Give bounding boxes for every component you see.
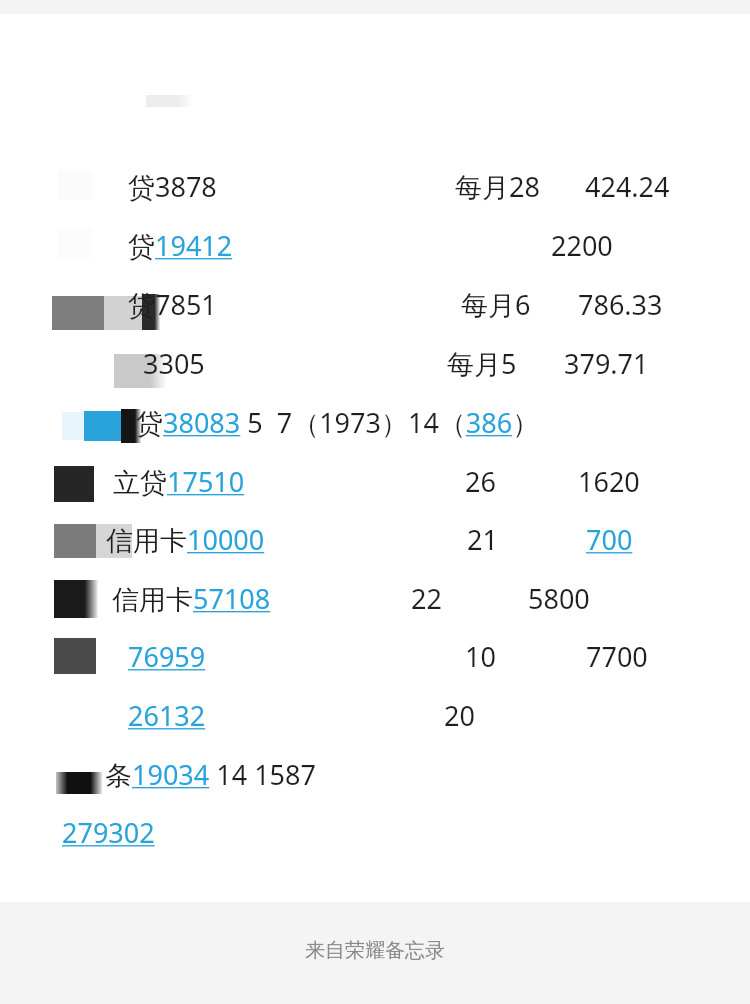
button[interactable]: 76959 bbox=[128, 638, 206, 675]
staticText: 10 bbox=[465, 638, 496, 675]
staticText: 424.24 bbox=[585, 168, 670, 205]
button[interactable]: 贷38083 5 7（1973）14（386） bbox=[136, 404, 540, 441]
button[interactable]: 26 bbox=[465, 463, 496, 500]
staticText: 379.71 bbox=[564, 345, 649, 382]
staticText: 7700 bbox=[586, 638, 648, 675]
button[interactable]: 1620 bbox=[578, 463, 640, 500]
button[interactable]: 2200 bbox=[551, 227, 613, 264]
staticText: 信用卡10000 bbox=[106, 521, 265, 558]
button[interactable]: 信用卡57108 bbox=[112, 580, 271, 617]
staticText: 2200 bbox=[551, 227, 613, 264]
button[interactable]: 每月5 bbox=[447, 345, 517, 382]
staticText: 贷38083 5 7（1973）14（386） bbox=[136, 404, 540, 441]
staticText: 20 bbox=[444, 697, 475, 734]
staticText: 条19034 14 1587 bbox=[105, 756, 316, 793]
button[interactable]: 700 bbox=[586, 521, 633, 558]
button[interactable]: 379.71 bbox=[564, 345, 649, 382]
staticText: 每月28 bbox=[455, 168, 540, 205]
button[interactable]: 7700 bbox=[586, 638, 648, 675]
staticText: 贷3878 bbox=[128, 168, 217, 205]
button[interactable]: 贷3878 bbox=[128, 168, 217, 205]
button[interactable]: 5800 bbox=[528, 580, 590, 617]
staticText: 21 bbox=[467, 521, 498, 558]
button[interactable]: 10 bbox=[465, 638, 496, 675]
staticText: 贷19412 bbox=[128, 227, 233, 264]
button[interactable]: 279302 bbox=[62, 814, 155, 851]
button[interactable]: 贷19412 bbox=[128, 227, 233, 264]
button[interactable]: 424.24 bbox=[585, 168, 670, 205]
button[interactable]: 来自荣耀备忘录 bbox=[305, 938, 445, 963]
staticText: 279302 bbox=[62, 814, 155, 851]
staticText: 786.33 bbox=[578, 286, 663, 323]
button[interactable]: 每月28 bbox=[455, 168, 540, 205]
staticText: 每月6 bbox=[461, 286, 531, 323]
button[interactable]: 22 bbox=[411, 580, 442, 617]
button[interactable]: 条19034 14 1587 bbox=[105, 756, 316, 793]
staticText: 每月5 bbox=[447, 345, 517, 382]
button[interactable]: 3305 bbox=[143, 345, 205, 382]
button[interactable]: 26132 bbox=[128, 697, 206, 734]
staticText: 贷7851 bbox=[128, 286, 217, 323]
staticText: 700 bbox=[586, 521, 633, 558]
staticText: 信用卡57108 bbox=[112, 580, 271, 617]
button[interactable]: 信用卡10000 bbox=[106, 521, 265, 558]
button[interactable]: 每月6 bbox=[461, 286, 531, 323]
button[interactable]: 贷7851 bbox=[128, 286, 217, 323]
button[interactable]: 21 bbox=[467, 521, 498, 558]
staticText: 1620 bbox=[578, 463, 640, 500]
staticText: 76959 bbox=[128, 638, 206, 675]
button[interactable]: 立贷17510 bbox=[113, 463, 245, 500]
staticText: 22 bbox=[411, 580, 442, 617]
staticText: 26132 bbox=[128, 697, 206, 734]
staticText: 3305 bbox=[143, 345, 205, 382]
button[interactable]: 20 bbox=[444, 697, 475, 734]
staticText: 立贷17510 bbox=[113, 463, 245, 500]
staticText: 来自荣耀备忘录 bbox=[305, 938, 445, 963]
staticText: 26 bbox=[465, 463, 496, 500]
button[interactable]: 786.33 bbox=[578, 286, 663, 323]
staticText: 5800 bbox=[528, 580, 590, 617]
